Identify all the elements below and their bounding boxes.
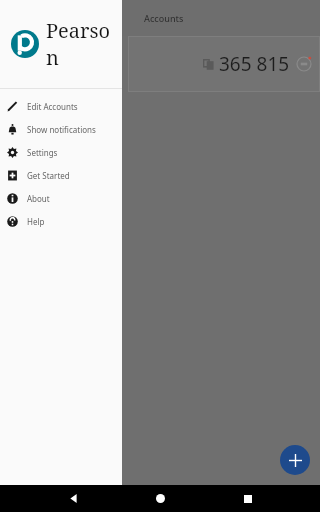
staticText: Pearson [46,17,122,71]
staticText: Accounts [144,12,184,24]
button[interactable]: Status [296,56,312,72]
button[interactable]: Help [0,210,122,233]
button[interactable]: Get Started [0,164,122,187]
button[interactable]: Add account [280,445,310,475]
staticText: Help [27,216,45,227]
button[interactable]: Recent apps [233,485,263,512]
other: Copy [203,59,214,70]
button[interactable]: About [0,187,122,210]
button[interactable]: Show notifications [0,118,122,141]
button[interactable]: Copy [128,36,320,92]
staticText: Get Started [27,170,70,181]
staticText: Show notifications [27,124,96,135]
staticText: 365 815 [219,51,290,77]
button[interactable]: Home [145,485,175,512]
button[interactable]: Settings [0,141,122,164]
staticText: Edit Accounts [27,101,78,112]
button[interactable]: Edit Accounts [0,95,122,118]
staticText: Settings [27,147,58,158]
button[interactable]: Back [58,485,88,512]
staticText: About [27,193,50,204]
